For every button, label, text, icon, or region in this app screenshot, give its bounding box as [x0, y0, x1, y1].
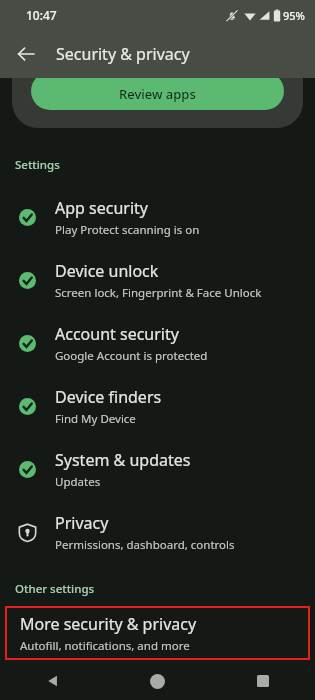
button[interactable]: Back — [0, 662, 105, 700]
button[interactable]: Back — [8, 36, 44, 72]
button[interactable]: Device unlock — [0, 249, 315, 312]
staticText: 95% — [283, 8, 305, 23]
button[interactable]: Review apps — [31, 78, 284, 110]
staticText: Other settings — [15, 581, 95, 597]
staticText: Autofill, notifications, and more — [20, 638, 190, 654]
button[interactable]: App security — [0, 186, 315, 249]
staticText: 10:47 — [26, 7, 57, 23]
staticText: Security & privacy — [56, 43, 190, 65]
staticText: Settings — [15, 157, 60, 173]
staticText: Updates — [55, 474, 101, 490]
staticText: App security — [55, 197, 148, 219]
staticText: Account security — [55, 323, 179, 345]
button[interactable]: Recent apps — [210, 662, 315, 700]
staticText: Find My Device — [55, 411, 136, 427]
button[interactable]: System & updates — [0, 438, 315, 501]
button[interactable]: Privacy — [0, 501, 315, 564]
staticText: Screen lock, Fingerprint & Face Unlock — [55, 285, 262, 301]
staticText: System & updates — [55, 449, 191, 471]
staticText: More security & privacy — [20, 613, 197, 635]
staticText: Privacy — [55, 512, 109, 534]
button[interactable]: Device finders — [0, 375, 315, 438]
button[interactable]: Home — [105, 662, 210, 700]
button[interactable]: Review apps — [12, 78, 303, 128]
button[interactable]: Account security — [0, 312, 315, 375]
staticText: Device unlock — [55, 260, 159, 282]
staticText: Review apps — [119, 85, 196, 103]
staticText: Permissions, dashboard, controls — [55, 537, 235, 553]
staticText: Google Account is protected — [55, 348, 208, 364]
staticText: Device finders — [55, 386, 162, 408]
button[interactable]: More security & privacy — [5, 606, 310, 660]
staticText: Play Protect scanning is on — [55, 222, 200, 238]
